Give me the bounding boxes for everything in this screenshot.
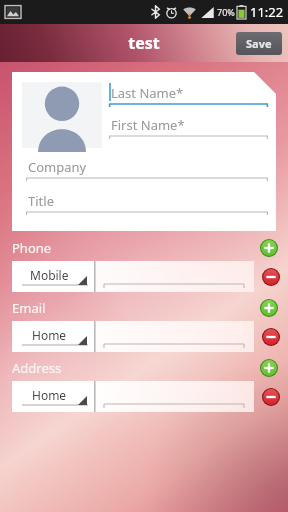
button[interactable]: Remove Email bbox=[254, 321, 288, 352]
button[interactable]: Last Name* bbox=[109, 82, 268, 107]
button[interactable]: Title bbox=[26, 190, 268, 215]
staticText: Address bbox=[12, 359, 62, 377]
staticText: Mobile bbox=[30, 267, 69, 283]
staticText: Company bbox=[28, 158, 87, 176]
button[interactable]: Home bbox=[12, 321, 94, 352]
staticText: Home bbox=[32, 387, 67, 403]
button[interactable]: First Name* bbox=[109, 114, 268, 139]
staticText: Phone bbox=[12, 239, 52, 257]
button[interactable]: Remove Phone bbox=[254, 261, 288, 292]
staticText: First Name* bbox=[111, 116, 185, 134]
button[interactable]: Remove Address bbox=[254, 381, 288, 412]
button[interactable]: Save bbox=[236, 32, 282, 55]
button[interactable]: Add Address bbox=[260, 359, 278, 377]
button[interactable]: Mobile bbox=[12, 261, 94, 292]
button[interactable] bbox=[94, 321, 254, 352]
staticText: Email bbox=[12, 299, 46, 317]
staticText: Save bbox=[246, 36, 272, 51]
button[interactable]: Company bbox=[26, 156, 268, 181]
button[interactable]: Add Phone bbox=[260, 239, 278, 257]
staticText: Title bbox=[28, 192, 54, 210]
button[interactable] bbox=[94, 261, 254, 292]
button[interactable]: Contact photo bbox=[22, 82, 102, 148]
button[interactable]: Home bbox=[12, 381, 94, 412]
staticText: 70% bbox=[217, 6, 235, 18]
button[interactable]: Add Email bbox=[260, 299, 278, 317]
staticText: Home bbox=[32, 327, 67, 343]
staticText: test bbox=[128, 32, 160, 54]
staticText: 11:22 bbox=[250, 3, 284, 21]
staticText: Last Name* bbox=[111, 84, 184, 102]
button[interactable] bbox=[94, 381, 254, 412]
